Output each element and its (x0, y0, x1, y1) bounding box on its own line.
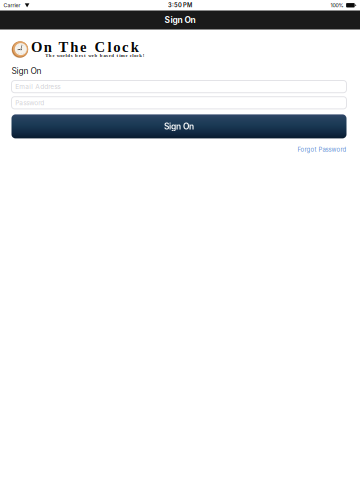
staticText: The worlds best web based time clock! (45, 53, 145, 58)
button[interactable]: Forgot Password (297, 146, 346, 153)
staticText: Sign On (164, 121, 194, 131)
staticText: Sign On (11, 66, 41, 76)
button[interactable]: Sign On (11, 114, 346, 138)
staticText: 3:50 PM (168, 2, 192, 9)
staticText: Password (15, 99, 44, 107)
staticText: Carrier (4, 2, 21, 8)
staticText: Sign On (164, 15, 195, 25)
staticText: 100% (331, 2, 344, 8)
staticText: Email Address (15, 83, 60, 90)
staticText: On The Clock (31, 39, 139, 55)
staticText: Forgot Password (297, 146, 346, 153)
